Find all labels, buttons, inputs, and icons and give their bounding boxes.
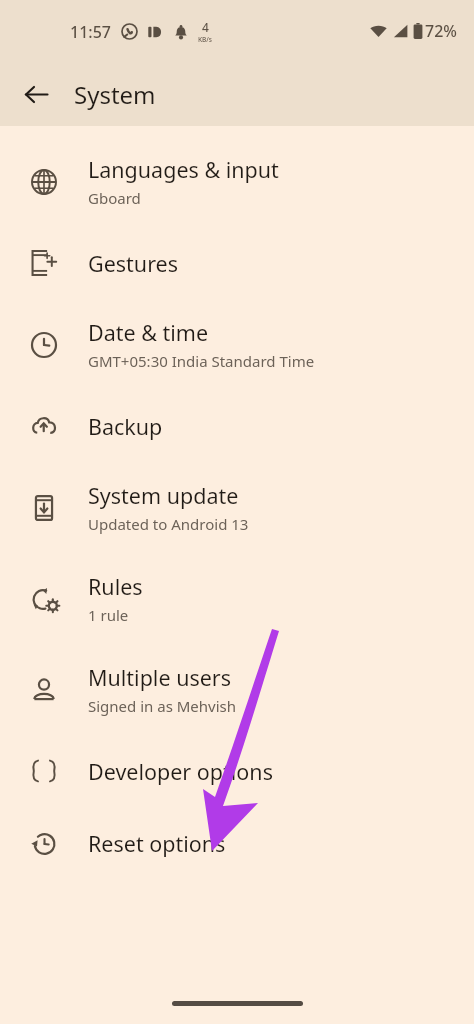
button[interactable]: Reset options [0, 807, 474, 879]
staticText: Backup [88, 412, 163, 441]
button[interactable]: Backup [0, 390, 474, 462]
staticText: 1 rule [88, 605, 129, 625]
button[interactable]: Developer options [0, 735, 474, 807]
staticText: Date & time [88, 318, 209, 347]
staticText: Rules [88, 572, 143, 601]
staticText: System update [88, 481, 239, 510]
button[interactable]: Date & time [0, 299, 474, 390]
button[interactable]: Languages & input [0, 136, 474, 227]
staticText: Updated to Android 13 [88, 514, 249, 534]
staticText: Multiple users [88, 663, 232, 692]
staticText: GMT+05:30 India Standard Time [88, 351, 315, 371]
staticText: 72% [425, 20, 457, 42]
staticText: Developer options [88, 757, 273, 786]
staticText: Reset options [88, 829, 226, 858]
button[interactable]: Gestures [0, 227, 474, 299]
staticText: 11:57 [70, 21, 111, 43]
button[interactable]: Rules [0, 553, 474, 644]
staticText: Gestures [88, 249, 178, 278]
staticText: KB/s [198, 35, 213, 44]
staticText: Languages & input [88, 155, 279, 184]
staticText: 4 [202, 19, 209, 35]
button[interactable]: System update [0, 462, 474, 553]
staticText: System [74, 78, 156, 111]
staticText: Signed in as Mehvish [88, 696, 237, 716]
button[interactable]: Multiple users [0, 644, 474, 735]
staticText: Gboard [88, 188, 141, 208]
button[interactable]: Back [12, 70, 60, 118]
